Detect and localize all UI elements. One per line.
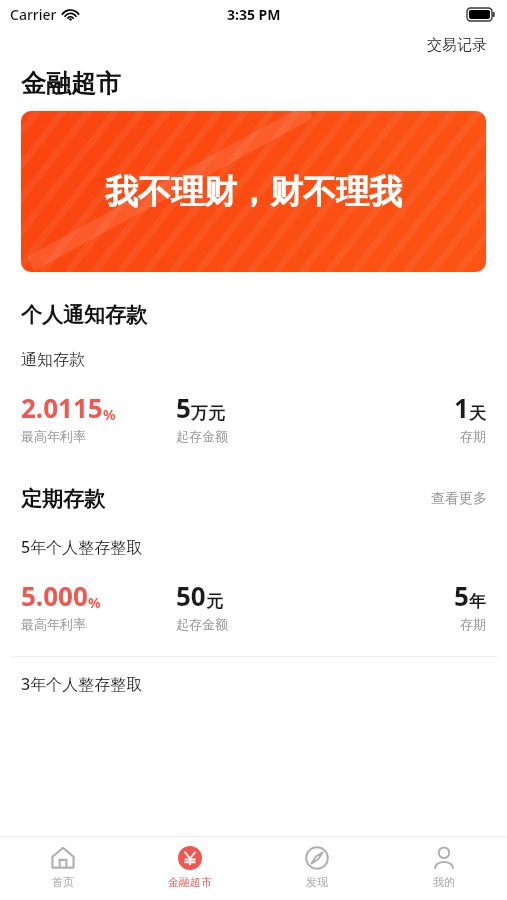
- staticText: 天: [469, 403, 486, 424]
- staticText: 通知存款: [21, 350, 85, 370]
- staticText: 元: [206, 591, 223, 612]
- staticText: 金融超市: [21, 68, 121, 99]
- staticText: 查看更多: [431, 490, 487, 508]
- button[interactable]: 金融超市: [126, 837, 253, 900]
- button[interactable]: 查看更多: [411, 484, 507, 514]
- staticText: 我的: [433, 875, 455, 889]
- staticText: 最高年利率: [21, 616, 86, 632]
- button[interactable]: 首页: [0, 837, 126, 900]
- staticText: 3:35 PM: [227, 5, 281, 24]
- button[interactable]: 发现: [253, 837, 380, 900]
- staticText: 存期: [460, 428, 486, 444]
- button[interactable]: 通知存款: [0, 350, 507, 444]
- staticText: 5: [176, 390, 191, 425]
- staticText: 3年个人整存整取: [21, 673, 143, 695]
- staticText: 首页: [52, 875, 74, 889]
- staticText: 5: [454, 578, 469, 613]
- staticText: Carrier: [10, 5, 57, 24]
- staticText: 最高年利率: [21, 428, 86, 444]
- button[interactable]: 5年个人整存整取: [0, 536, 507, 632]
- staticText: 2.0115: [21, 390, 103, 425]
- other: 金融超市: [178, 846, 202, 870]
- staticText: 起存金额: [176, 428, 228, 444]
- staticText: 1: [454, 390, 469, 425]
- staticText: 存期: [460, 616, 486, 632]
- staticText: 定期存款: [21, 486, 105, 512]
- staticText: 发现: [306, 875, 328, 889]
- staticText: 5年个人整存整取: [21, 536, 143, 558]
- staticText: %: [88, 593, 101, 612]
- button[interactable]: 我不理财，财不理我: [21, 111, 486, 272]
- other: 发现: [305, 846, 329, 870]
- staticText: %: [103, 405, 116, 424]
- staticText: 年: [469, 591, 486, 612]
- staticText: 50: [176, 578, 206, 613]
- button[interactable]: 交易记录: [407, 32, 507, 59]
- staticText: 万元: [191, 403, 225, 424]
- other: 首页: [51, 846, 75, 870]
- staticText: 我不理财，财不理我: [105, 171, 402, 213]
- button[interactable]: 我的: [380, 837, 507, 900]
- staticText: 起存金额: [176, 616, 228, 632]
- staticText: 5.000: [21, 578, 88, 613]
- staticText: 金融超市: [168, 875, 212, 889]
- other: 我的: [432, 846, 456, 870]
- staticText: 个人通知存款: [21, 302, 147, 328]
- staticText: 交易记录: [427, 36, 487, 55]
